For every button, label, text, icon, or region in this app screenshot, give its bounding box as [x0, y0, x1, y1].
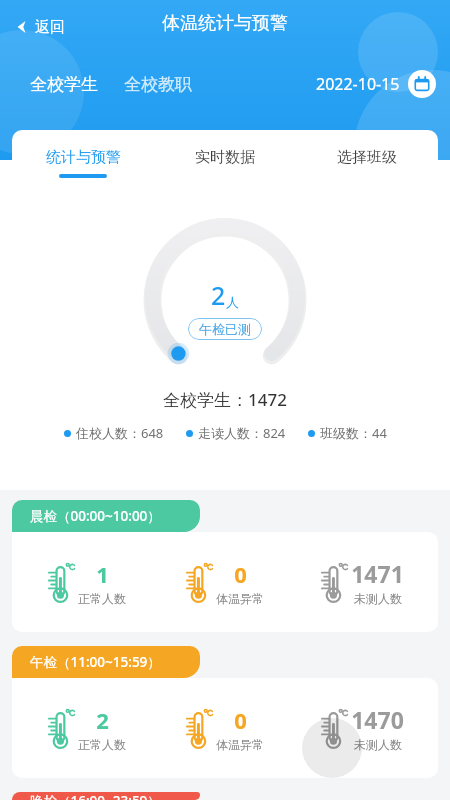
staticText: 正常人数 [78, 591, 126, 606]
staticText: 体温统计与预警 [162, 12, 288, 35]
staticText: 2022-10-15 [316, 73, 400, 95]
staticText: 返回 [35, 18, 65, 37]
staticText: 体温异常 [216, 737, 264, 752]
staticText: 2 [211, 278, 226, 312]
button[interactable]: 1 [12, 532, 438, 632]
staticText: 全校教职 [124, 74, 192, 95]
staticText: 实时数据 [195, 148, 255, 167]
button[interactable]: 统计与预警 [12, 130, 154, 192]
staticText: 0 [234, 559, 247, 589]
staticText: 人 [226, 294, 239, 310]
staticText: 住校人数：648 [76, 424, 164, 442]
staticText: 晚检（16:00~23:59） [30, 792, 161, 800]
staticText: 未测人数 [354, 591, 402, 606]
button[interactable]: 选择日期 [408, 70, 436, 98]
staticText: 1 [96, 559, 109, 589]
staticText: 选择班级 [337, 148, 397, 167]
staticText: 全校学生：1472 [163, 388, 287, 411]
staticText: 0 [234, 705, 247, 735]
staticText: 1470 [351, 704, 404, 735]
button[interactable]: 选择班级 [296, 130, 438, 192]
staticText: 未测人数 [354, 737, 402, 752]
staticText: 午检（11:00~15:59） [30, 653, 161, 671]
button[interactable]: 全校教职 [124, 74, 192, 95]
button[interactable]: 返回 [10, 10, 69, 44]
staticText: 全校学生 [30, 74, 98, 95]
staticText: 统计与预警 [46, 148, 121, 167]
staticText: 正常人数 [78, 737, 126, 752]
staticText: 晨检（00:00~10:00） [30, 507, 161, 525]
button[interactable]: 全校学生 [30, 74, 98, 95]
staticText: 班级数：44 [320, 424, 387, 442]
button[interactable]: 晚检（16:00~23:59） [12, 792, 200, 800]
button[interactable]: 2 [12, 678, 438, 778]
button[interactable]: 午检（11:00~15:59） [12, 646, 200, 678]
staticText: 2 [96, 705, 109, 735]
button[interactable]: 晨检（00:00~10:00） [12, 500, 200, 532]
button[interactable]: 午检已测 [188, 318, 262, 340]
staticText: 体温异常 [216, 591, 264, 606]
button[interactable]: 实时数据 [154, 130, 296, 192]
staticText: 1471 [351, 558, 404, 589]
staticText: 走读人数：824 [198, 424, 286, 442]
staticText: 午检已测 [199, 321, 251, 337]
